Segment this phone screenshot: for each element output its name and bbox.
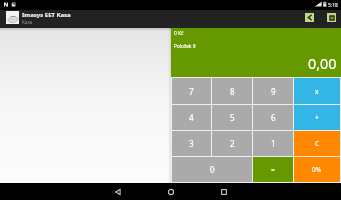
button[interactable]: App icon, navigate up xyxy=(6,11,19,24)
button[interactable]: Receipts xyxy=(327,13,336,22)
staticText: 0% xyxy=(312,165,322,174)
staticText: 2 xyxy=(230,138,235,149)
button[interactable]: Back xyxy=(91,183,144,200)
staticText: x xyxy=(315,87,319,96)
staticText: 3 xyxy=(189,138,194,149)
button[interactable]: 5 xyxy=(212,105,252,130)
staticText: 8 xyxy=(230,86,235,97)
button[interactable]: 9 xyxy=(253,78,293,104)
button[interactable]: + xyxy=(294,105,340,130)
staticText: Položek 0 xyxy=(174,43,196,50)
button[interactable]: 7 xyxy=(172,78,211,104)
button[interactable]: = xyxy=(253,157,293,182)
button[interactable]: Back xyxy=(305,13,314,22)
button[interactable]: 8 xyxy=(212,78,252,104)
button[interactable]: Recent apps xyxy=(197,183,250,200)
button[interactable]: x xyxy=(294,78,340,104)
staticText: 0 Kč xyxy=(174,30,184,37)
staticText: 9 xyxy=(271,86,276,97)
button[interactable]: 0% xyxy=(294,157,340,182)
staticText: = xyxy=(271,165,275,174)
staticText: 7 xyxy=(189,86,194,97)
staticText: 1 xyxy=(271,138,276,149)
staticText: 5 xyxy=(230,112,235,123)
staticText: 4 xyxy=(189,112,194,123)
button[interactable]: 0 xyxy=(172,157,252,182)
button[interactable]: 1 xyxy=(253,131,293,156)
button[interactable]: 2 xyxy=(212,131,252,156)
staticText: Kasa xyxy=(22,19,33,25)
staticText: 0 xyxy=(210,164,215,175)
button[interactable]: Home xyxy=(144,183,197,200)
staticText: 5:18 xyxy=(328,2,338,9)
staticText: 0,00 xyxy=(308,54,337,73)
staticText: Imasys EET Kasa xyxy=(22,11,71,19)
button[interactable]: C xyxy=(294,131,340,156)
button[interactable]: 3 xyxy=(172,131,211,156)
staticText: 6 xyxy=(271,112,276,123)
button[interactable]: 6 xyxy=(253,105,293,130)
staticText: C xyxy=(315,139,320,148)
button[interactable]: 4 xyxy=(172,105,211,130)
staticText: + xyxy=(315,113,319,122)
